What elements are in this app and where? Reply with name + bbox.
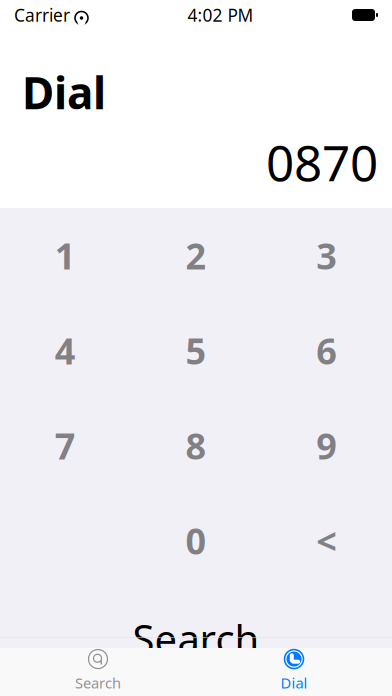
button[interactable]: < bbox=[261, 493, 392, 588]
staticText: 8 bbox=[185, 422, 206, 469]
button[interactable]: 5 bbox=[131, 303, 261, 398]
staticText: Search bbox=[75, 673, 121, 693]
staticText: 4:02 PM bbox=[187, 3, 253, 26]
button[interactable]: Search bbox=[0, 642, 196, 696]
staticText: Dial bbox=[280, 673, 307, 693]
staticText: 9 bbox=[316, 422, 337, 469]
button[interactable]: Dial bbox=[196, 642, 392, 696]
button[interactable]: 9 bbox=[261, 398, 392, 493]
staticText: 6 bbox=[316, 327, 337, 374]
staticText: 5 bbox=[185, 327, 206, 374]
staticText: 0870 bbox=[266, 129, 378, 195]
button[interactable]: 2 bbox=[131, 208, 261, 303]
staticText: 3 bbox=[316, 232, 337, 279]
staticText: Search bbox=[132, 612, 259, 665]
button[interactable]: 0 bbox=[131, 493, 261, 588]
button[interactable]: 1 bbox=[0, 208, 131, 303]
staticText: Carrier bbox=[14, 3, 70, 26]
staticText: 7 bbox=[55, 422, 76, 469]
button[interactable]: 8 bbox=[131, 398, 261, 493]
staticText: < bbox=[316, 517, 337, 564]
button[interactable]: 4 bbox=[0, 303, 131, 398]
button[interactable]: 7 bbox=[0, 398, 131, 493]
button[interactable]: 6 bbox=[261, 303, 392, 398]
button[interactable]: 3 bbox=[261, 208, 392, 303]
staticText: 4 bbox=[55, 327, 76, 374]
staticText: 0 bbox=[185, 517, 206, 564]
button[interactable]: Search bbox=[0, 602, 392, 675]
staticText: Dial bbox=[22, 63, 106, 121]
staticText: 1 bbox=[55, 232, 76, 279]
staticText: 2 bbox=[185, 232, 206, 279]
